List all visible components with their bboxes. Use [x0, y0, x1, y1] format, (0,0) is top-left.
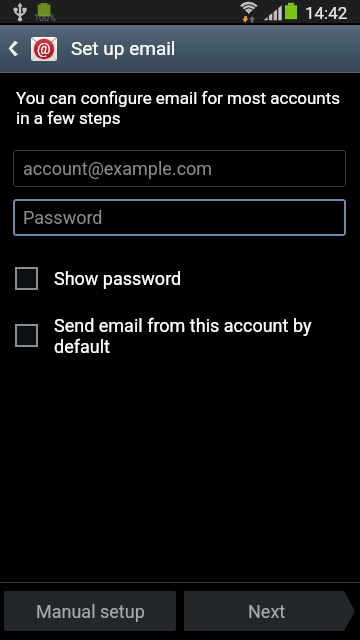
staticText: Show password	[54, 268, 320, 289]
staticText: 14:42	[305, 3, 348, 23]
button[interactable]: Next	[184, 591, 355, 631]
staticText: Password	[23, 207, 103, 228]
staticText: 100%	[34, 13, 56, 24]
staticText: Send email from this account by default	[54, 315, 320, 357]
staticText: account@example.com	[23, 158, 213, 179]
staticText: Manual setup	[36, 601, 145, 622]
button[interactable]: account@example.com	[13, 150, 346, 187]
staticText: Next	[248, 601, 286, 622]
button[interactable]: Send email from this account by default	[0, 313, 360, 363]
button[interactable]: Manual setup	[4, 591, 176, 631]
staticText: You can configure email for most account…	[16, 88, 346, 128]
button[interactable]: Show password	[0, 262, 360, 312]
button[interactable]: Navigate up	[0, 25, 26, 71]
staticText: Set up email	[71, 37, 176, 59]
button[interactable]: Password	[13, 199, 346, 236]
staticText: @	[37, 40, 51, 58]
